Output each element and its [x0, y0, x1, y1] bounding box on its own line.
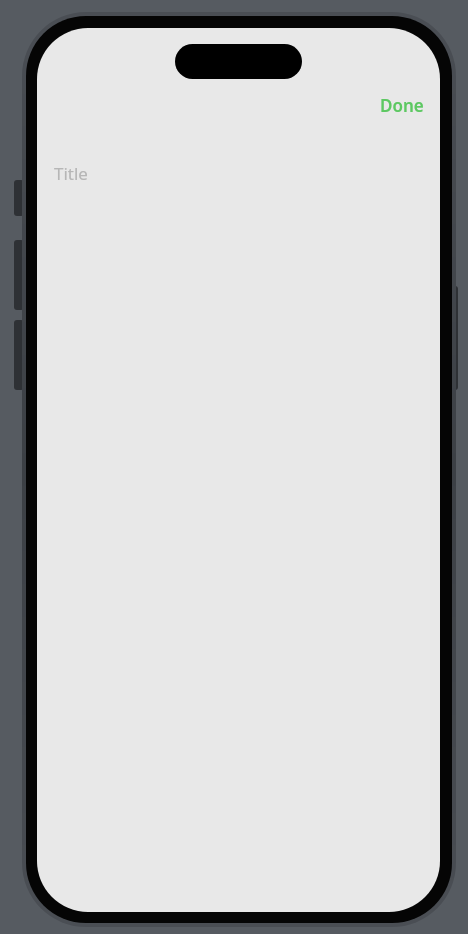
- button[interactable]: Ring silent switch: [14, 180, 24, 216]
- button[interactable]: Done: [368, 88, 436, 123]
- button[interactable]: Volume down: [14, 320, 24, 390]
- button[interactable]: Side button: [450, 286, 458, 390]
- staticText: Done: [380, 94, 424, 117]
- button[interactable]: Volume up: [14, 240, 24, 310]
- button[interactable]: Title: [54, 156, 440, 190]
- staticText: Title: [54, 162, 88, 185]
